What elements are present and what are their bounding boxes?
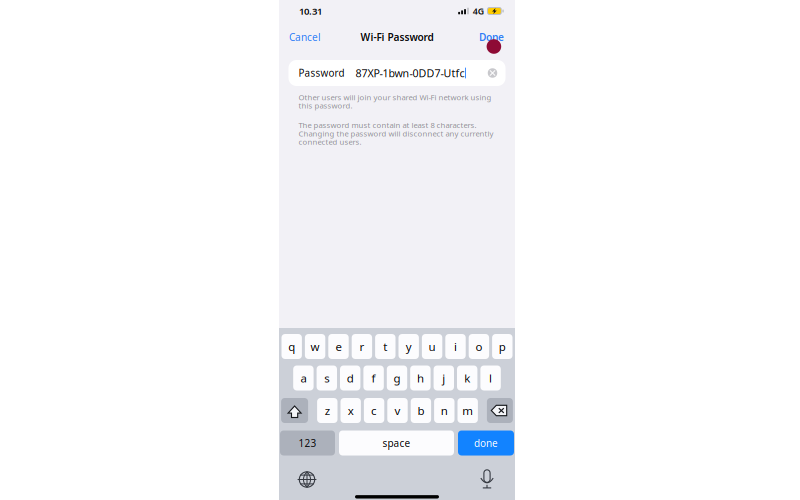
button[interactable]: w [305,334,325,359]
staticText: z [325,403,330,418]
staticText: a [300,370,306,386]
staticText: this password. [298,100,352,111]
button[interactable]: x [340,398,361,423]
staticText: The password must contain at least 8 cha… [298,120,476,130]
button[interactable]: 123 [280,430,335,455]
staticText: s [324,370,329,386]
button[interactable]: m [457,398,478,423]
button[interactable]: b [411,398,431,423]
staticText: m [462,403,473,418]
staticText: Password [298,66,344,80]
staticText: j [442,370,445,386]
staticText: c [371,403,377,418]
button[interactable]: q [281,334,302,359]
button[interactable]: d [340,365,360,390]
staticText: r [359,339,364,354]
button[interactable]: y [398,334,419,359]
staticText: 87XP-1bwn-0DD7-Utfc [355,66,464,80]
staticText: g [393,370,400,386]
staticText: h [417,370,424,386]
staticText: f [372,370,376,386]
staticText: done [474,436,498,450]
button[interactable]: c [364,398,384,423]
button[interactable]: Dictate [476,468,498,490]
staticText: i [454,339,457,354]
staticText: Done [479,30,504,44]
button[interactable]: v [387,398,408,423]
staticText: 123 [298,436,316,450]
staticText: Cancel [289,30,321,44]
button[interactable]: g [387,365,407,390]
button[interactable]: e [328,334,349,359]
button[interactable]: done [458,430,514,455]
staticText: k [464,370,470,386]
staticText: space [382,436,410,450]
staticText: x [348,403,354,418]
button[interactable]: j [434,365,454,390]
staticText: 10.31 [299,4,322,18]
button[interactable]: Cancel [279,22,331,52]
staticText: w [311,339,320,354]
staticText: o [475,339,482,354]
staticText: d [347,370,354,386]
button[interactable]: f [363,365,384,390]
button[interactable]: n [434,398,454,423]
staticText: 4G [473,5,484,17]
staticText: e [335,339,341,354]
button[interactable]: s [317,365,337,390]
staticText: q [288,339,295,354]
button[interactable]: k [457,365,477,390]
button[interactable]: l [480,365,501,390]
staticText: b [417,403,424,418]
button[interactable]: h [410,365,431,390]
staticText: t [383,339,387,354]
button[interactable]: p [492,334,512,359]
staticText: n [441,403,448,418]
button[interactable]: Clear text [482,63,502,83]
staticText: Other users will join your shared Wi-Fi … [298,92,491,102]
button[interactable]: space [339,430,454,455]
staticText: l [489,370,492,386]
button[interactable]: o [469,334,489,359]
staticText: Changing the password will disconnect an… [298,128,493,139]
button[interactable]: Done [468,22,515,52]
button[interactable]: t [375,334,395,359]
button[interactable]: Delete [487,398,513,423]
button[interactable]: r [352,334,372,359]
staticText: v [394,403,400,418]
button[interactable]: z [317,398,337,423]
button[interactable]: Switch keyboard [296,468,318,490]
staticText: p [499,339,506,354]
staticText: connected users. [298,137,361,147]
button[interactable]: i [445,334,466,359]
staticText: Wi-Fi Password [360,30,433,44]
button[interactable]: a [293,365,314,390]
button[interactable]: u [422,334,442,359]
staticText: u [429,339,436,354]
staticText: y [406,339,412,354]
button[interactable]: Shift [281,398,308,423]
